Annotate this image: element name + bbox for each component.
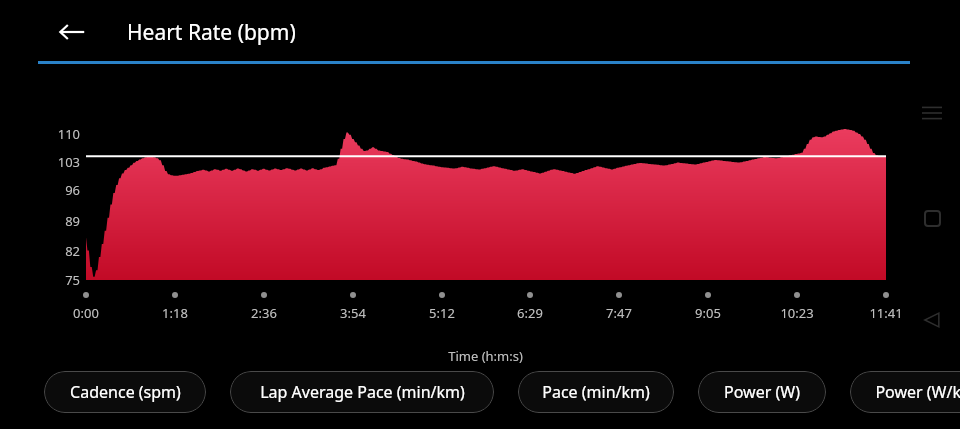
button[interactable]: Power (W) [698, 371, 826, 413]
staticText: 1:18 [162, 304, 188, 322]
staticText: Heart Rate (bpm) [127, 18, 296, 47]
button[interactable]: Pace (min/km) [518, 371, 674, 413]
staticText: Time (h:m:s) [448, 347, 523, 365]
staticText: Pace (min/km) [542, 381, 650, 403]
staticText: 9:05 [695, 304, 721, 322]
staticText: Cadence (spm) [70, 381, 181, 403]
staticText: 7:47 [606, 304, 632, 322]
staticText: 75 [65, 271, 80, 289]
staticText: 0:00 [73, 304, 99, 322]
button[interactable]: Lap Average Pace (min/km) [230, 371, 494, 413]
staticText: 110 [57, 125, 80, 143]
staticText: 11:41 [869, 304, 903, 322]
button[interactable]: Power (W/kg) [850, 371, 960, 413]
staticText: Power (W) [724, 381, 800, 403]
button[interactable]: Recent apps [915, 96, 949, 130]
staticText: 5:12 [429, 304, 455, 322]
button[interactable]: Back [915, 303, 949, 337]
button[interactable]: Cadence (spm) [44, 371, 206, 413]
staticText: 103 [57, 153, 80, 171]
staticText: 96 [65, 181, 80, 199]
staticText: 6:29 [517, 304, 543, 322]
staticText: 10:23 [780, 304, 814, 322]
staticText: Lap Average Pace (min/km) [260, 381, 465, 403]
staticText: 89 [65, 212, 80, 230]
staticText: 3:54 [340, 304, 366, 322]
button[interactable]: Home [915, 201, 949, 235]
staticText: Power (W/kg) [875, 381, 960, 403]
staticText: 2:36 [251, 304, 277, 322]
button[interactable]: Back [50, 10, 94, 54]
staticText: 82 [65, 242, 80, 260]
